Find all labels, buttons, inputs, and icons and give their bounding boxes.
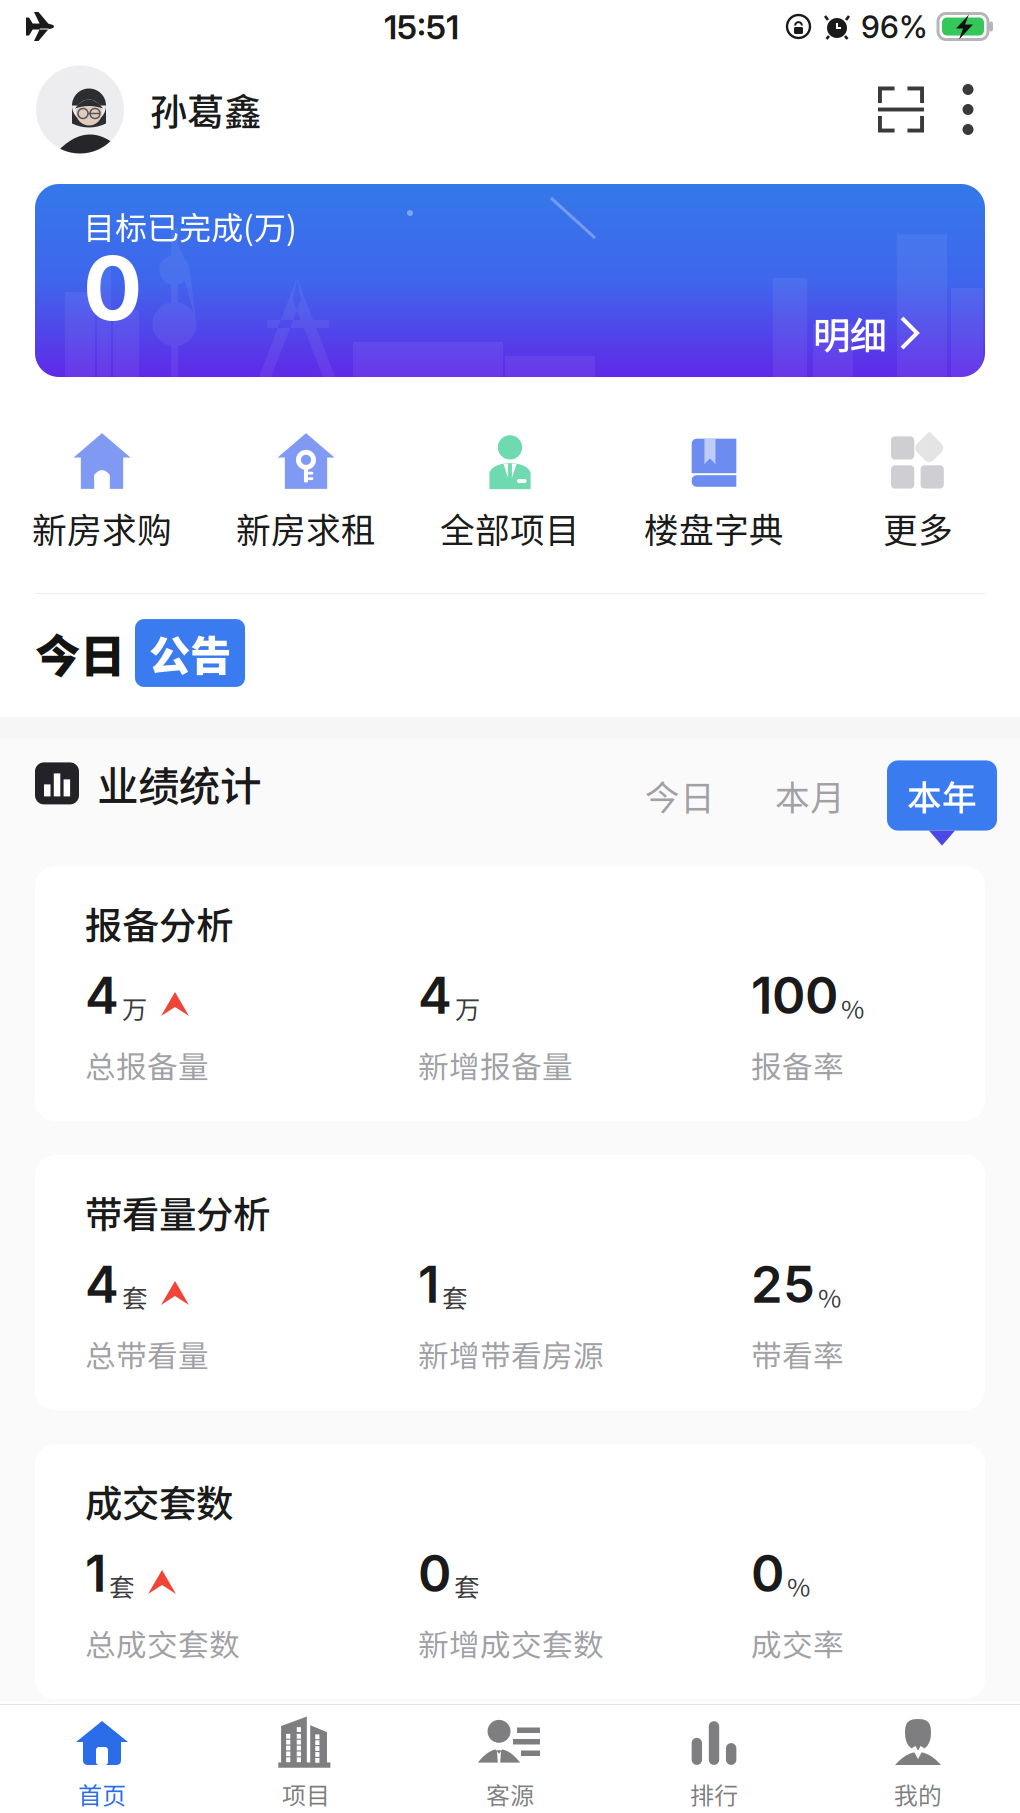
staticText: 我的 [894, 1777, 942, 1811]
staticText: 96% [861, 8, 928, 45]
staticText: 本月 [775, 770, 845, 821]
staticText: 套 [109, 1567, 134, 1604]
staticText: 总成交套数 [85, 1621, 240, 1665]
button[interactable]: 全部项目 [408, 432, 612, 550]
staticText: % [841, 989, 864, 1026]
staticText: 今日 [645, 770, 715, 821]
button[interactable]: 本月 [769, 760, 851, 846]
button[interactable]: 排行 [612, 1713, 816, 1811]
staticText: 总报备量 [85, 1043, 209, 1087]
button[interactable]: 更多 [816, 432, 1020, 550]
staticText: 4 [418, 965, 452, 1026]
staticText: 本年 [907, 770, 977, 821]
staticText: 今日 [35, 620, 125, 686]
staticText: 新房求购 [32, 503, 172, 553]
staticText: 客源 [486, 1777, 534, 1811]
staticText: 套 [122, 1278, 147, 1315]
button[interactable]: 客源 [408, 1713, 612, 1811]
staticText: 总带看量 [85, 1332, 209, 1376]
staticText: 0 [418, 1543, 451, 1604]
staticText: 全部项目 [440, 503, 580, 553]
button[interactable]: 今日 [639, 760, 721, 846]
staticText: 公告 [149, 623, 231, 683]
staticText: 新增报备量 [418, 1043, 573, 1087]
staticText: 25 [751, 1254, 815, 1315]
staticText: 成交套数 [85, 1474, 233, 1528]
button[interactable]: 孙葛鑫 [36, 65, 261, 153]
button[interactable]: 目标已完成(万) [35, 184, 985, 377]
staticText: 更多 [883, 503, 953, 553]
staticText: 首页 [78, 1777, 126, 1811]
staticText: 新增成交套数 [418, 1621, 604, 1665]
button[interactable]: 首页 [0, 1713, 204, 1811]
button[interactable]: 新房求租 [204, 432, 408, 550]
staticText: % [818, 1278, 841, 1315]
staticText: 孙葛鑫 [150, 82, 261, 137]
staticText: 新增带看房源 [418, 1332, 604, 1376]
staticText: 楼盘字典 [644, 503, 784, 553]
staticText: 套 [442, 1278, 467, 1315]
button[interactable]: 新房求购 [0, 432, 204, 550]
staticText: 4 [85, 1254, 119, 1315]
staticText: 1 [418, 1254, 439, 1315]
staticText: 0 [751, 1543, 784, 1604]
staticText: 1 [85, 1543, 106, 1604]
staticText: 报备分析 [85, 896, 233, 950]
staticText: 成交率 [751, 1621, 844, 1665]
staticText: 万 [122, 989, 147, 1026]
staticText: 100 [751, 965, 838, 1026]
staticText: 排行 [690, 1777, 738, 1811]
button[interactable]: 项目 [204, 1713, 408, 1811]
button[interactable]: 楼盘字典 [612, 432, 816, 550]
staticText: 万 [455, 989, 480, 1026]
staticText: 报备率 [751, 1043, 844, 1087]
staticText: % [787, 1567, 810, 1604]
staticText: 带看率 [751, 1332, 844, 1376]
button[interactable]: 扫一扫 [866, 74, 936, 144]
staticText: 套 [454, 1567, 479, 1604]
button[interactable]: 更多 [936, 74, 1000, 144]
button[interactable]: 本年 [887, 760, 997, 846]
staticText: 明细 [813, 306, 887, 360]
button[interactable]: 今日 [35, 625, 245, 681]
staticText: 4 [85, 965, 119, 1026]
staticText: 新房求租 [236, 503, 376, 553]
staticText: 带看量分析 [85, 1185, 270, 1239]
button[interactable]: 我的 [816, 1713, 1020, 1811]
staticText: 项目 [282, 1777, 330, 1811]
staticText: 15:51 [384, 7, 459, 47]
staticText: 目标已完成(万) [83, 203, 297, 249]
staticText: 0 [83, 235, 142, 341]
staticText: 业绩统计 [97, 753, 261, 813]
